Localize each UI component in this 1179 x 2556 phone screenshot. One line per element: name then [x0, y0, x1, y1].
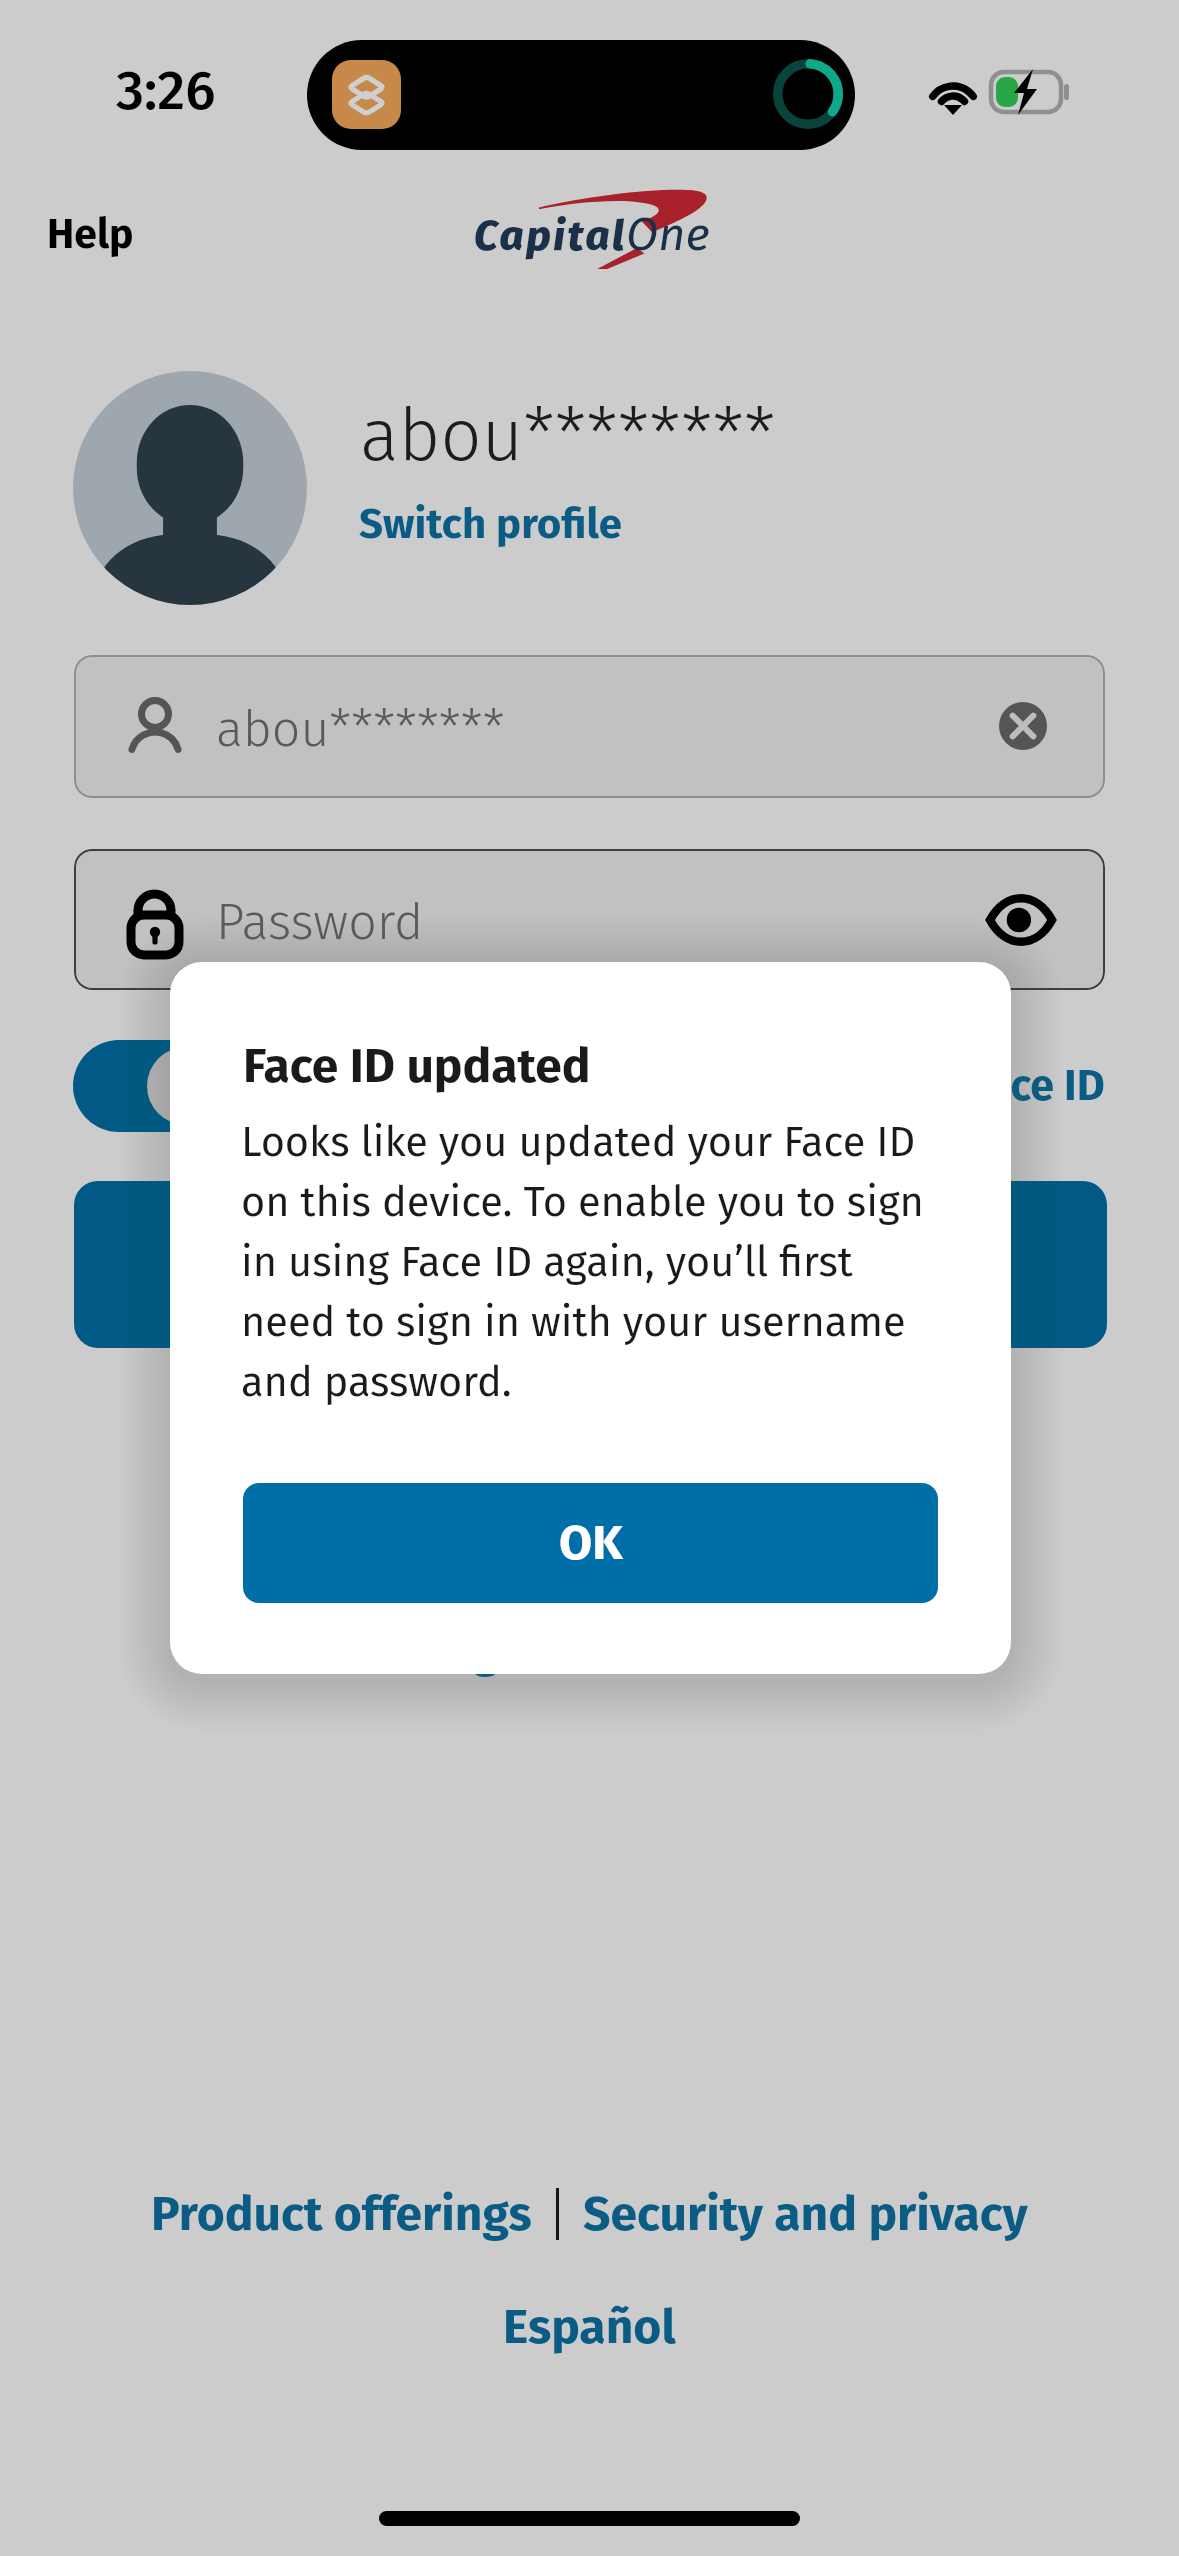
staticText: One [626, 206, 710, 262]
staticText: Product offerings [151, 2185, 532, 2243]
button[interactable]: Password [74, 849, 1105, 990]
button[interactable]: Use Face ID [73, 1040, 1105, 1132]
button[interactable]: Forgot username? [393, 1612, 787, 1693]
button[interactable]: Product offerings [145, 2171, 538, 2257]
button[interactable]: OK [243, 1483, 938, 1603]
staticText: Sign In [513, 1235, 668, 1295]
staticText: Security and privacy [583, 2185, 1028, 2243]
staticText: Password [216, 892, 424, 952]
staticText: abou******** [360, 393, 776, 479]
button[interactable]: Security and privacy [577, 2171, 1034, 2257]
button[interactable]: Español [491, 2284, 688, 2370]
staticText: abou******** [216, 699, 505, 759]
button[interactable]: Switch profile [333, 484, 648, 564]
button[interactable]: Help [17, 190, 164, 279]
staticText: Face ID updated [243, 1037, 591, 1095]
button[interactable]: Profile picture [73, 371, 307, 605]
staticText: Español [503, 2298, 676, 2356]
staticText: 3:26 [116, 58, 216, 124]
staticText: Capital [474, 211, 627, 261]
staticText: Looks like you updated your Face ID on t… [241, 1117, 941, 1407]
staticText: Switch profile [359, 499, 622, 549]
staticText: Forgot username? [411, 1626, 769, 1679]
button[interactable]: Sign In [74, 1181, 1107, 1348]
button[interactable]: Show password [986, 887, 1056, 953]
button[interactable]: Clear username [999, 702, 1047, 750]
staticText: OK [559, 1514, 623, 1572]
staticText: Help [47, 210, 134, 259]
button[interactable]: abou******** [74, 655, 1105, 798]
staticText: Use Face ID [886, 1060, 1105, 1112]
